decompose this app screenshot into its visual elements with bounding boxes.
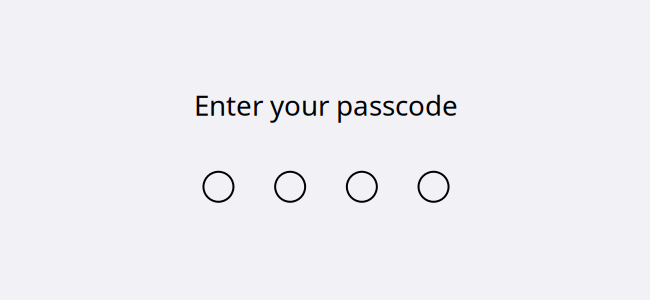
staticText: Enter your passcode xyxy=(194,86,458,124)
button[interactable]: Passcode, 0 of 4 digits entered xyxy=(203,171,448,203)
